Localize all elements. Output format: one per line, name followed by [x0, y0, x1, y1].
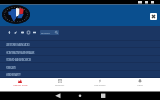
button[interactable]: HD INTERACTIVE WEATHER RADAR [0, 48, 160, 56]
button[interactable]: STORM CHASING RESOURCES [0, 55, 160, 63]
button[interactable]: Close ad [150, 13, 157, 20]
button[interactable]: Instagram [25, 29, 31, 35]
staticText: Live Stream [94, 84, 106, 87]
staticText: Forecasts [55, 84, 65, 87]
staticText: Weather Radar [13, 84, 28, 87]
staticText: LIVE STORM CHASING VIDEO [6, 43, 30, 47]
staticText: STORM CHASING RESOURCES [6, 58, 31, 62]
staticText: HD INTERACTIVE WEATHER RADAR [6, 51, 34, 55]
button[interactable]: WEATHER SAFETY [0, 70, 160, 78]
staticText: SEARCH [41, 31, 50, 34]
staticText: Alerts [137, 84, 143, 87]
button[interactable]: YouTube [19, 29, 25, 35]
button[interactable]: Twitter [12, 29, 18, 35]
button[interactable]: FORECASTS [0, 63, 160, 71]
button[interactable]: Facebook [6, 29, 12, 35]
staticText: WEATHER SAFETY [6, 73, 21, 77]
staticText: FORECASTS [6, 66, 16, 70]
button[interactable]: Email [31, 29, 37, 35]
button[interactable]: SEARCH [40, 30, 59, 35]
button[interactable]: Live Stream [80, 78, 120, 92]
button[interactable]: Weather Radar [0, 78, 40, 92]
button[interactable]: LIVE STORM CHASING VIDEO [0, 40, 160, 48]
button[interactable]: Forecasts [40, 78, 80, 92]
button[interactable]: Alerts [120, 78, 160, 92]
